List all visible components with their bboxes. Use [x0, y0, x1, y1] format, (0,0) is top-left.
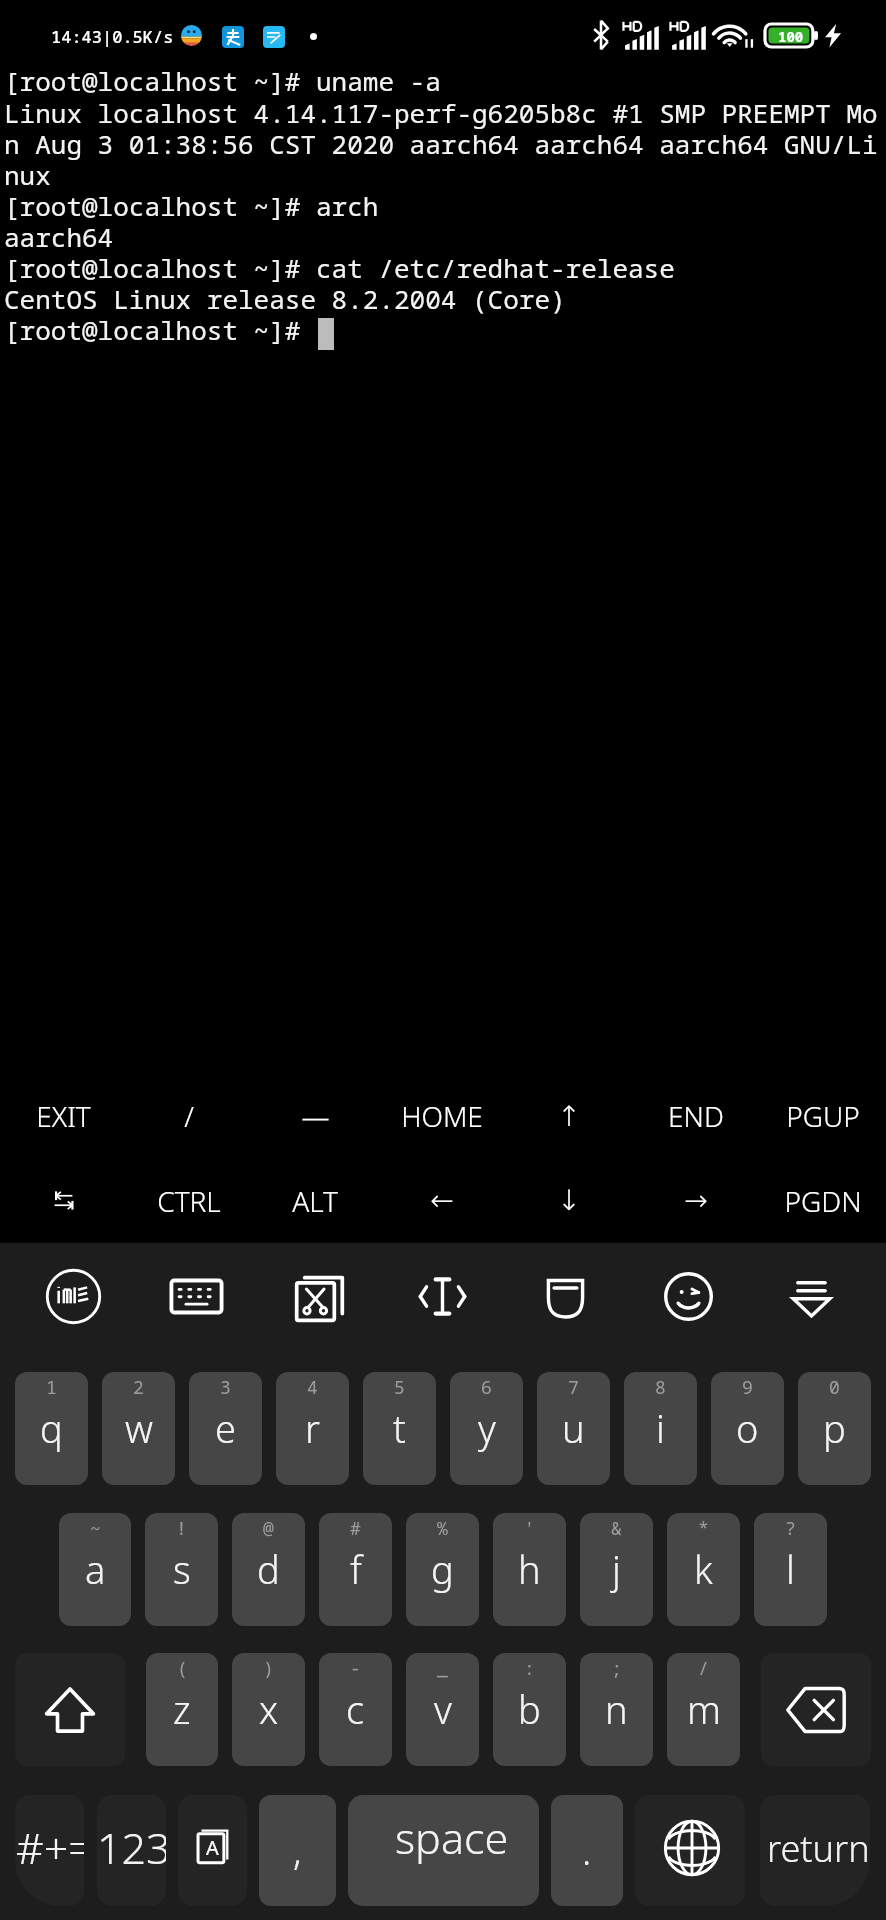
button[interactable]: Backspace — [761, 1653, 871, 1766]
staticText: 14:43|0.5K/s — [51, 25, 174, 48]
button[interactable]: return — [760, 1795, 870, 1906]
button[interactable]: Clipboard — [258, 1243, 381, 1349]
staticText: 1 — [46, 1375, 57, 1400]
button[interactable]: Emoji — [627, 1243, 750, 1349]
button[interactable]: CTRL — [126, 1158, 252, 1243]
staticText: c — [346, 1683, 365, 1735]
button[interactable]: 1 — [15, 1372, 88, 1485]
staticText: / — [184, 1097, 194, 1135]
button[interactable]: 9 — [711, 1372, 784, 1485]
staticText: ) — [263, 1656, 274, 1681]
button[interactable]: ← — [378, 1158, 505, 1243]
button[interactable]: ~ — [59, 1513, 131, 1626]
button[interactable]: space — [348, 1795, 539, 1906]
button[interactable]: 3 — [189, 1372, 262, 1485]
staticText: r — [305, 1402, 320, 1454]
staticText: i — [656, 1402, 665, 1454]
staticText: return — [767, 1824, 870, 1873]
staticText: A — [206, 1834, 219, 1861]
button[interactable]: 5 — [363, 1372, 436, 1485]
staticText: 2 — [133, 1375, 144, 1400]
button[interactable]: → — [632, 1158, 759, 1243]
button[interactable]: PGUP — [759, 1074, 886, 1158]
button[interactable]: : — [493, 1653, 566, 1766]
button[interactable]: ) — [232, 1653, 305, 1766]
button[interactable]: 0 — [798, 1372, 871, 1485]
staticText: ? — [785, 1516, 796, 1541]
button[interactable]: _ — [406, 1653, 479, 1766]
button[interactable]: & — [580, 1513, 653, 1626]
staticText: [root@localhost ~]# uname -a Linux local… — [4, 63, 878, 347]
button[interactable]: Sticker — [504, 1243, 627, 1349]
button[interactable]: Cursor control — [381, 1243, 504, 1349]
button[interactable]: END — [632, 1074, 759, 1158]
staticText: _ — [437, 1656, 448, 1681]
button[interactable]: ↑ — [505, 1074, 632, 1158]
staticText: z — [173, 1683, 191, 1735]
button[interactable]: Switch keyboard language — [635, 1795, 745, 1906]
button[interactable]: % — [406, 1513, 479, 1626]
staticText: e — [215, 1402, 236, 1454]
button[interactable]: # — [319, 1513, 392, 1626]
staticText: x — [259, 1683, 279, 1735]
staticText: 123 — [97, 1818, 166, 1877]
button[interactable]: — — [252, 1074, 378, 1158]
staticText: y — [478, 1402, 496, 1454]
button[interactable]: - — [319, 1653, 392, 1766]
staticText: g — [431, 1543, 454, 1595]
staticText: w — [125, 1402, 153, 1454]
button[interactable]: , — [259, 1795, 336, 1906]
staticText: : — [524, 1656, 535, 1681]
button[interactable]: 8 — [624, 1372, 697, 1485]
staticText: PGUP — [786, 1097, 860, 1135]
button[interactable]: #+= — [15, 1795, 84, 1906]
button[interactable]: Hide keyboard — [750, 1243, 873, 1349]
button[interactable]: ALT — [252, 1158, 378, 1243]
staticText: n — [605, 1683, 628, 1735]
staticText: #+= — [16, 1818, 84, 1877]
button[interactable]: ; — [580, 1653, 653, 1766]
staticText: d — [257, 1543, 280, 1595]
staticText: , — [293, 1824, 302, 1876]
staticText: 3 — [220, 1375, 231, 1400]
button[interactable]: EXIT — [0, 1074, 126, 1158]
staticText: a — [85, 1543, 106, 1595]
staticText: @ — [263, 1516, 274, 1541]
button[interactable]: Keyboard layout — [135, 1243, 258, 1349]
staticText: ALT — [292, 1182, 338, 1220]
button[interactable]: Switch input language — [178, 1795, 247, 1906]
staticText: u — [562, 1402, 585, 1454]
staticText: l — [786, 1543, 795, 1595]
staticText: 4 — [307, 1375, 318, 1400]
staticText: END — [668, 1097, 724, 1135]
staticText: b — [518, 1683, 541, 1735]
button[interactable]: @ — [232, 1513, 305, 1626]
staticText: p — [823, 1402, 846, 1454]
button[interactable]: Shift — [15, 1653, 125, 1766]
button[interactable]: Tab — [0, 1158, 126, 1243]
staticText: — — [301, 1097, 330, 1135]
button[interactable]: ( — [146, 1653, 218, 1766]
button[interactable]: ? — [754, 1513, 827, 1626]
button[interactable]: 7 — [537, 1372, 610, 1485]
button[interactable]: 2 — [102, 1372, 175, 1485]
button[interactable]: HOME — [378, 1074, 505, 1158]
button[interactable]: PGDN — [759, 1158, 886, 1243]
staticText: m — [687, 1683, 721, 1735]
button[interactable]: * — [667, 1513, 740, 1626]
button[interactable]: Input method — [12, 1243, 135, 1349]
staticText: h — [518, 1543, 541, 1595]
staticText: ↑ — [557, 1100, 581, 1133]
staticText: j — [612, 1543, 621, 1595]
button[interactable]: 4 — [276, 1372, 349, 1485]
staticText: 100 — [778, 27, 804, 46]
button[interactable]: / — [667, 1653, 740, 1766]
button[interactable]: ' — [493, 1513, 566, 1626]
button[interactable]: . — [551, 1795, 623, 1906]
button[interactable]: 123 — [97, 1795, 166, 1906]
button[interactable]: 6 — [450, 1372, 523, 1485]
staticText: * — [698, 1516, 709, 1541]
button[interactable]: ! — [145, 1513, 218, 1626]
button[interactable]: / — [126, 1074, 252, 1158]
button[interactable]: ↓ — [505, 1158, 632, 1243]
